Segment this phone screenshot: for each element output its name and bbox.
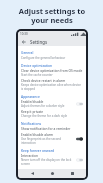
staticText: Check device restart in alarm [21, 79, 66, 83]
staticText: Configure the general behaviour [21, 56, 66, 60]
staticText: Show notification for a reminder [21, 127, 71, 131]
staticText: Keeps device optimization alive when dev… [21, 83, 83, 91]
staticText: Settings [30, 39, 48, 45]
button[interactable]: Back [26, 169, 38, 178]
staticText: Adjust themes for a darker style [21, 104, 65, 108]
button[interactable]: Clear device optimization from OS mode [21, 68, 83, 78]
staticText: Enable/disable [21, 100, 44, 104]
staticText: Use fingerprint as the second interactio… [21, 137, 74, 145]
staticText: 10:30 [20, 32, 28, 36]
button[interactable]: Keep it private [21, 109, 83, 119]
staticText: Never turn off the display on the lock s… [21, 158, 74, 166]
staticText: General [21, 50, 34, 54]
staticText: Interaction [21, 154, 38, 158]
button[interactable]: Check device restart in alarm [21, 78, 83, 92]
staticText: Notifications [21, 121, 42, 125]
button[interactable]: Toggle off [76, 158, 83, 162]
staticText: Change the theme for a dark style [21, 114, 68, 118]
button[interactable]: Toggle off [76, 102, 83, 106]
staticText: Adjust settings to your needs [15, 6, 89, 25]
button[interactable]: Toggle on [76, 137, 83, 141]
button[interactable]: Interaction [21, 153, 83, 167]
button[interactable]: Recent apps [66, 169, 78, 178]
staticText: Device optimization [21, 63, 53, 67]
staticText: Start the cache counter [21, 73, 53, 77]
button[interactable]: Configure the general behaviour [21, 55, 83, 61]
button[interactable]: Show notification for a reminder [21, 126, 83, 132]
button[interactable]: Navigate up [21, 39, 27, 45]
staticText: Appearance [21, 94, 40, 98]
staticText: Keep it private [21, 110, 44, 114]
button[interactable]: Home [46, 169, 58, 178]
button[interactable]: Enable/disable [21, 99, 83, 109]
button[interactable]: Enable/disable alarm [21, 132, 83, 146]
staticText: Keep forever onward [21, 148, 54, 152]
staticText: Clear device optimization from OS mode [21, 69, 83, 73]
staticText: Enable/disable alarm [21, 133, 54, 137]
